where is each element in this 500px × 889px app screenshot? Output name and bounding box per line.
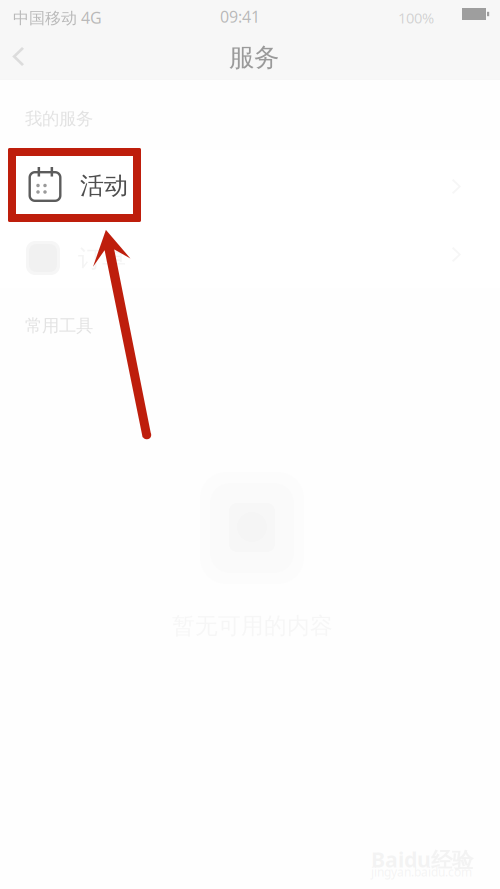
staticText: 活动 [80, 171, 128, 200]
staticText: 常用工具 [25, 315, 93, 336]
staticText: 09:41 [220, 6, 260, 27]
staticText: 我的服务 [25, 108, 93, 129]
staticText: 中国移动 4G [13, 7, 102, 28]
staticText: 服务 [229, 42, 279, 73]
staticText: 100% [398, 8, 434, 27]
staticText: jingyan.baidu.com [371, 864, 472, 880]
button[interactable]: 返回 [4, 30, 50, 80]
button[interactable]: 订单 [0, 221, 500, 288]
staticText: Baidu经验 [371, 845, 473, 873]
button[interactable]: 活动 [0, 152, 500, 220]
staticText: 订单 [78, 244, 126, 273]
